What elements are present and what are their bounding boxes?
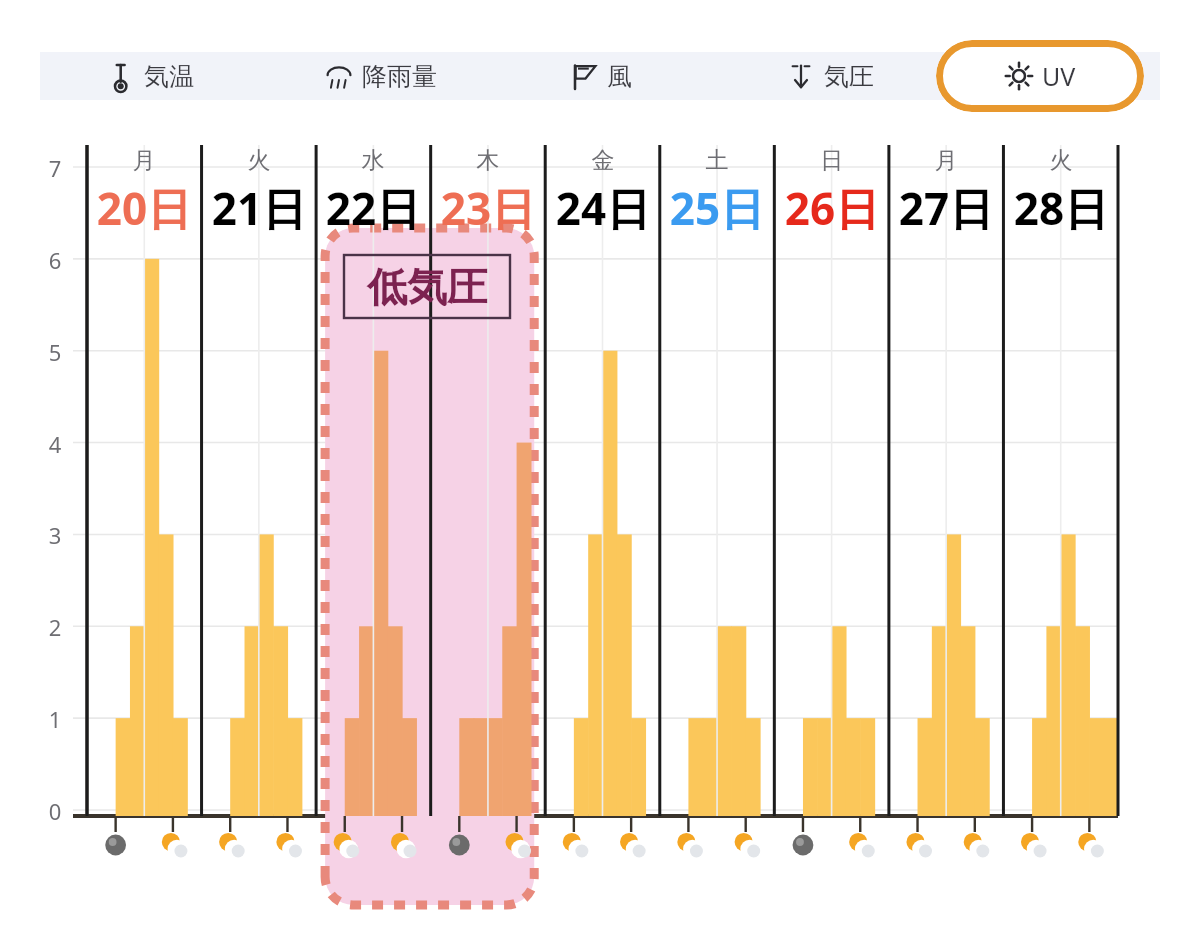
staticText: 3 <box>40 520 70 550</box>
staticText: 4 <box>40 429 70 459</box>
staticText: 火 <box>991 146 1131 175</box>
staticText: 6 <box>40 245 70 275</box>
staticText: 木 <box>418 146 558 175</box>
staticText: 土 <box>647 146 787 175</box>
staticText: 日 <box>762 146 902 175</box>
staticText: 23日 <box>413 178 563 238</box>
staticText: 月 <box>74 146 214 175</box>
staticText: 26日 <box>757 178 907 238</box>
staticText: 21日 <box>184 178 334 238</box>
staticText: 5 <box>40 337 70 367</box>
staticText: 低気圧 <box>344 262 510 312</box>
staticText: 気温 <box>144 61 194 92</box>
button[interactable]: UV <box>935 38 1145 114</box>
staticText: 金 <box>533 146 673 175</box>
staticText: 27日 <box>871 178 1021 238</box>
staticText: 水 <box>303 146 443 175</box>
staticText: 風 <box>607 61 632 92</box>
staticText: 月 <box>876 146 1016 175</box>
button[interactable]: 降雨量 <box>275 38 485 114</box>
staticText: 1 <box>40 704 70 734</box>
button[interactable]: 気温 <box>45 38 255 114</box>
staticText: 火 <box>189 146 329 175</box>
button[interactable]: 気圧 <box>725 38 935 114</box>
staticText: 降雨量 <box>362 61 437 92</box>
staticText: 25日 <box>642 178 792 238</box>
staticText: UV <box>1042 59 1076 93</box>
staticText: 20日 <box>69 178 219 238</box>
staticText: 22日 <box>298 178 448 238</box>
staticText: 2 <box>40 612 70 642</box>
staticText: 7 <box>40 153 70 183</box>
button[interactable]: UV index chart <box>0 0 1200 927</box>
staticText: 24日 <box>528 178 678 238</box>
staticText: 0 <box>40 796 70 826</box>
button[interactable]: 風 <box>495 38 705 114</box>
staticText: 28日 <box>986 178 1136 238</box>
staticText: 気圧 <box>824 61 874 92</box>
